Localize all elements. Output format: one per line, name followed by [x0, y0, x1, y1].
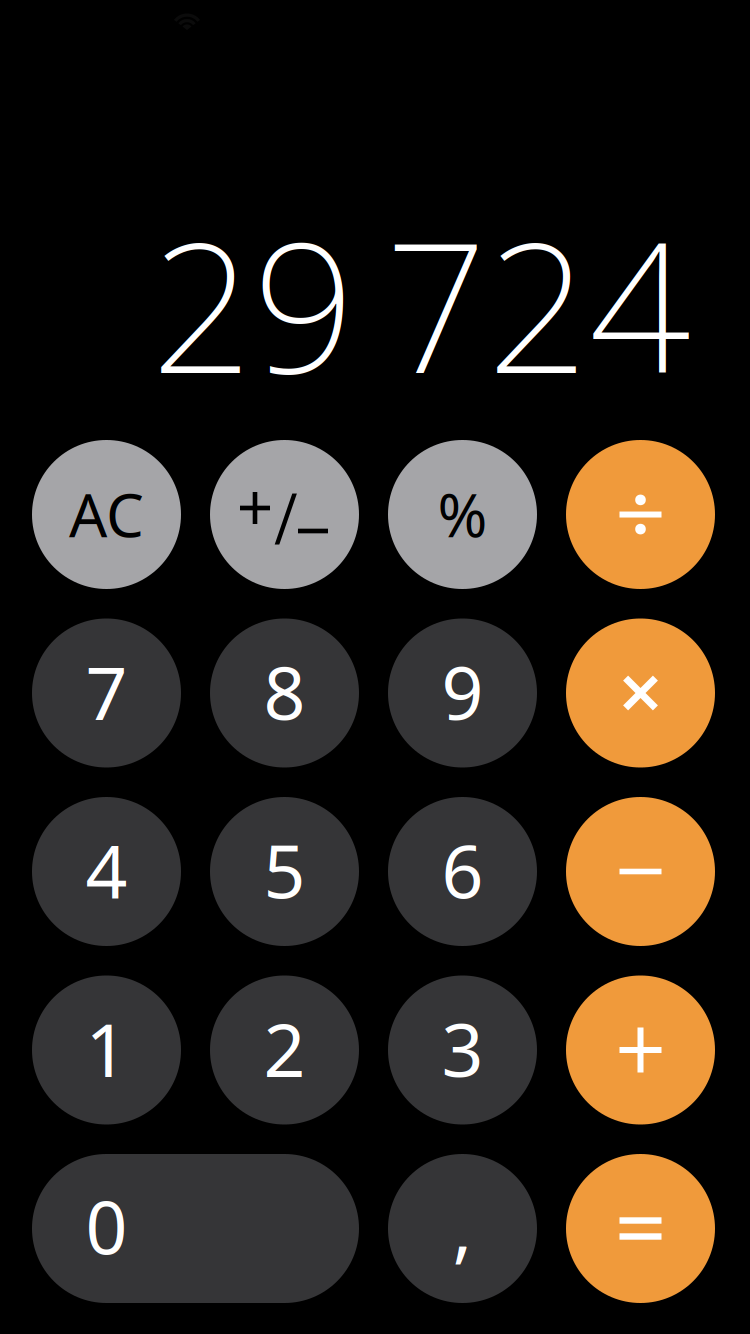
staticText: 29 724: [151, 185, 691, 422]
button[interactable]: 4: [32, 797, 181, 946]
button[interactable]: 6: [388, 797, 537, 946]
button[interactable]: AC: [32, 440, 181, 589]
button[interactable]: 3: [388, 975, 537, 1124]
staticText: ,: [452, 1178, 472, 1276]
button[interactable]: 5: [210, 797, 359, 946]
staticText: 2: [263, 1000, 305, 1097]
staticText: 3: [441, 1000, 483, 1097]
staticText: 5: [263, 821, 305, 919]
button[interactable]: Equals: [566, 1154, 715, 1303]
staticText: 0: [85, 1177, 127, 1275]
button[interactable]: 8: [210, 618, 359, 767]
button[interactable]: 7: [32, 618, 181, 767]
staticText: %: [437, 474, 487, 554]
button[interactable]: Subtract: [566, 797, 715, 946]
button[interactable]: 9: [388, 618, 537, 767]
button[interactable]: ,: [388, 1154, 537, 1303]
button[interactable]: Divide: [566, 440, 715, 589]
button[interactable]: 2: [210, 975, 359, 1124]
staticText: 8: [263, 643, 305, 740]
button[interactable]: Toggle sign: [210, 440, 359, 589]
staticText: AC: [69, 474, 144, 554]
button[interactable]: 0: [32, 1154, 359, 1303]
staticText: 7: [85, 643, 127, 740]
staticText: 4: [85, 821, 127, 919]
button[interactable]: Multiply: [566, 618, 715, 767]
button[interactable]: %: [388, 440, 537, 589]
button[interactable]: 1: [32, 975, 181, 1124]
staticText: 6: [441, 821, 483, 919]
staticText: 9: [441, 643, 483, 740]
button[interactable]: Add: [566, 975, 715, 1124]
staticText: 1: [85, 1000, 127, 1097]
